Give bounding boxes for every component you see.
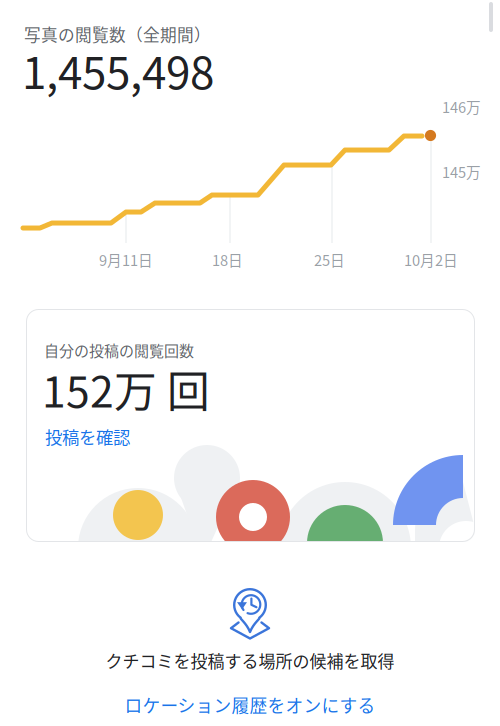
staticText: 10月2日	[404, 249, 458, 270]
staticText: 152万 回	[42, 358, 210, 420]
staticText: 自分の投稿の閲覧回数	[44, 339, 194, 361]
staticText: 146万	[442, 96, 481, 117]
staticText: 1,455,498	[22, 38, 214, 102]
staticText: 投稿を確認	[45, 424, 130, 449]
staticText: 9月11日	[99, 249, 153, 270]
staticText: ロケーション履歴をオンにする	[124, 692, 375, 718]
staticText: 145万	[442, 161, 481, 182]
staticText: クチコミを投稿する場所の候補を取得	[105, 648, 394, 673]
button[interactable]: 投稿を確認	[45, 424, 130, 449]
button[interactable]: ロケーション履歴をオンにする	[0, 692, 500, 718]
staticText: 18日	[212, 249, 243, 270]
staticText: 25日	[314, 249, 345, 270]
staticText: 写真の閲覧数（全期間）	[24, 22, 211, 46]
